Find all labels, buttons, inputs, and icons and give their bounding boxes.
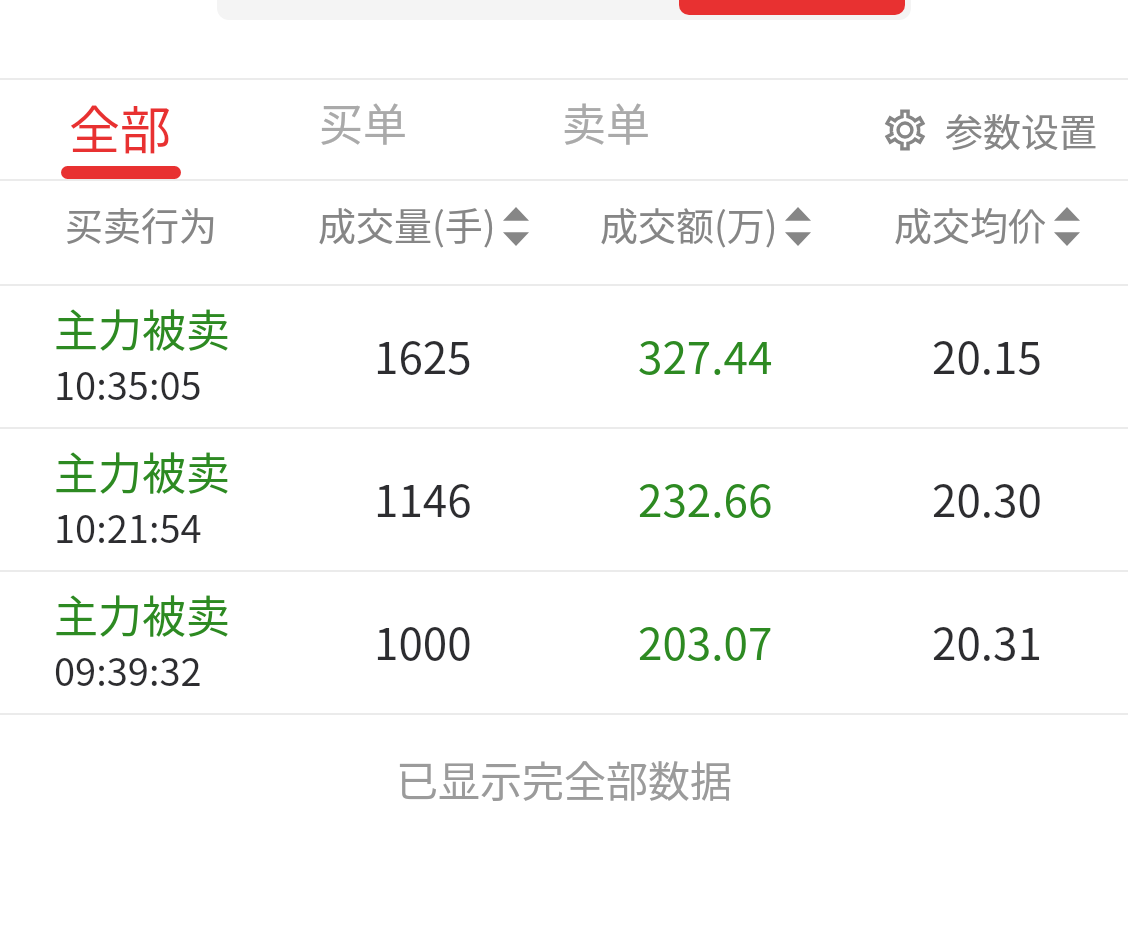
other: 参数设置: [884, 109, 926, 151]
staticText: 327.44: [638, 323, 773, 387]
staticText: 全部: [69, 90, 172, 164]
button[interactable]: 买单: [241, 80, 484, 179]
staticText: 买单: [319, 90, 407, 154]
staticText: 主力被卖: [54, 582, 230, 646]
staticText: 20.15: [932, 323, 1042, 387]
staticText: 20.31: [932, 609, 1042, 673]
button[interactable]: 成交额(万): [564, 172, 846, 275]
staticText: 成交均价: [894, 196, 1047, 251]
button[interactable]: 全部: [0, 80, 241, 179]
staticText: 10:21:54: [54, 499, 202, 554]
staticText: 已显示完全部数据: [396, 748, 733, 809]
staticText: 20.30: [932, 466, 1042, 530]
button[interactable]: 买卖行为: [0, 172, 282, 275]
staticText: 成交额(万): [600, 196, 778, 251]
button[interactable]: 主力被卖: [0, 429, 1128, 570]
staticText: 10:35:05: [54, 356, 202, 411]
staticText: 203.07: [638, 609, 773, 673]
staticText: 参数设置: [945, 102, 1098, 157]
staticText: 主力被卖: [54, 296, 230, 360]
staticText: 1000: [374, 609, 472, 673]
button[interactable]: [679, 0, 905, 15]
button[interactable]: 成交均价: [846, 172, 1128, 275]
button[interactable]: 主力被卖: [0, 286, 1128, 427]
button[interactable]: [217, 0, 911, 20]
staticText: 主力被卖: [54, 439, 230, 503]
staticText: 1625: [374, 323, 472, 387]
button[interactable]: 主力被卖: [0, 572, 1128, 713]
staticText: 09:39:32: [54, 642, 202, 697]
staticText: 买卖行为: [65, 196, 218, 251]
staticText: 1146: [374, 466, 472, 530]
staticText: 232.66: [638, 466, 773, 530]
button[interactable]: 成交量(手): [282, 172, 564, 275]
staticText: 成交量(手): [318, 196, 496, 251]
button[interactable]: 参数设置: [860, 80, 1128, 179]
staticText: 卖单: [562, 90, 650, 154]
button[interactable]: 卖单: [484, 80, 727, 179]
